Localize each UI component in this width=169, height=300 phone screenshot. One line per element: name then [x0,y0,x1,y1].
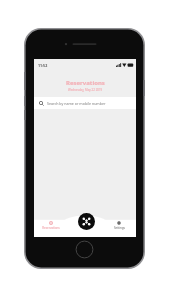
staticText: Reservations [66,79,105,87]
button[interactable]: Reservations [34,221,68,230]
staticText: Settings [114,226,125,230]
staticText: 11:52 [38,63,48,68]
staticText: Wednesday, May 22 2019 [68,88,103,92]
button[interactable]: Add reservation [78,213,95,230]
button[interactable]: Search by name or mobile number [34,97,136,109]
staticText: Reservations [42,226,60,230]
staticText: Search by name or mobile number [47,101,106,106]
button[interactable]: Settings [102,221,136,230]
